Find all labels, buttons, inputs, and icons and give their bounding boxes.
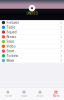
staticText: News [21, 94, 27, 98]
button[interactable]: Squad [0, 30, 64, 35]
staticText: Stats [6, 39, 14, 44]
staticText: Home [4, 94, 11, 98]
button[interactable]: Store [0, 49, 64, 54]
button[interactable]: Home [0, 88, 16, 100]
button[interactable]: Tickets [0, 53, 64, 58]
staticText: Tickets [6, 54, 18, 58]
staticText: UNITED [26, 11, 37, 15]
staticText: More [53, 94, 59, 98]
button[interactable]: More [48, 88, 64, 100]
staticText: More [6, 58, 14, 63]
staticText: Table [6, 25, 15, 30]
staticText: Squad [6, 30, 16, 34]
button[interactable]: Shop [32, 88, 48, 100]
button[interactable]: Video [0, 44, 64, 49]
staticText: Fixtures [6, 20, 19, 25]
button[interactable]: More [0, 58, 64, 63]
button[interactable]: News [0, 34, 64, 39]
button[interactable]: Table [0, 25, 64, 30]
button[interactable]: Fixtures [0, 20, 64, 25]
button[interactable]: Stats [0, 39, 64, 44]
button[interactable]: News [16, 88, 32, 100]
staticText: Store [6, 49, 14, 53]
staticText: Video [6, 44, 15, 49]
staticText: News [6, 35, 16, 39]
staticText: Shop [36, 94, 43, 98]
